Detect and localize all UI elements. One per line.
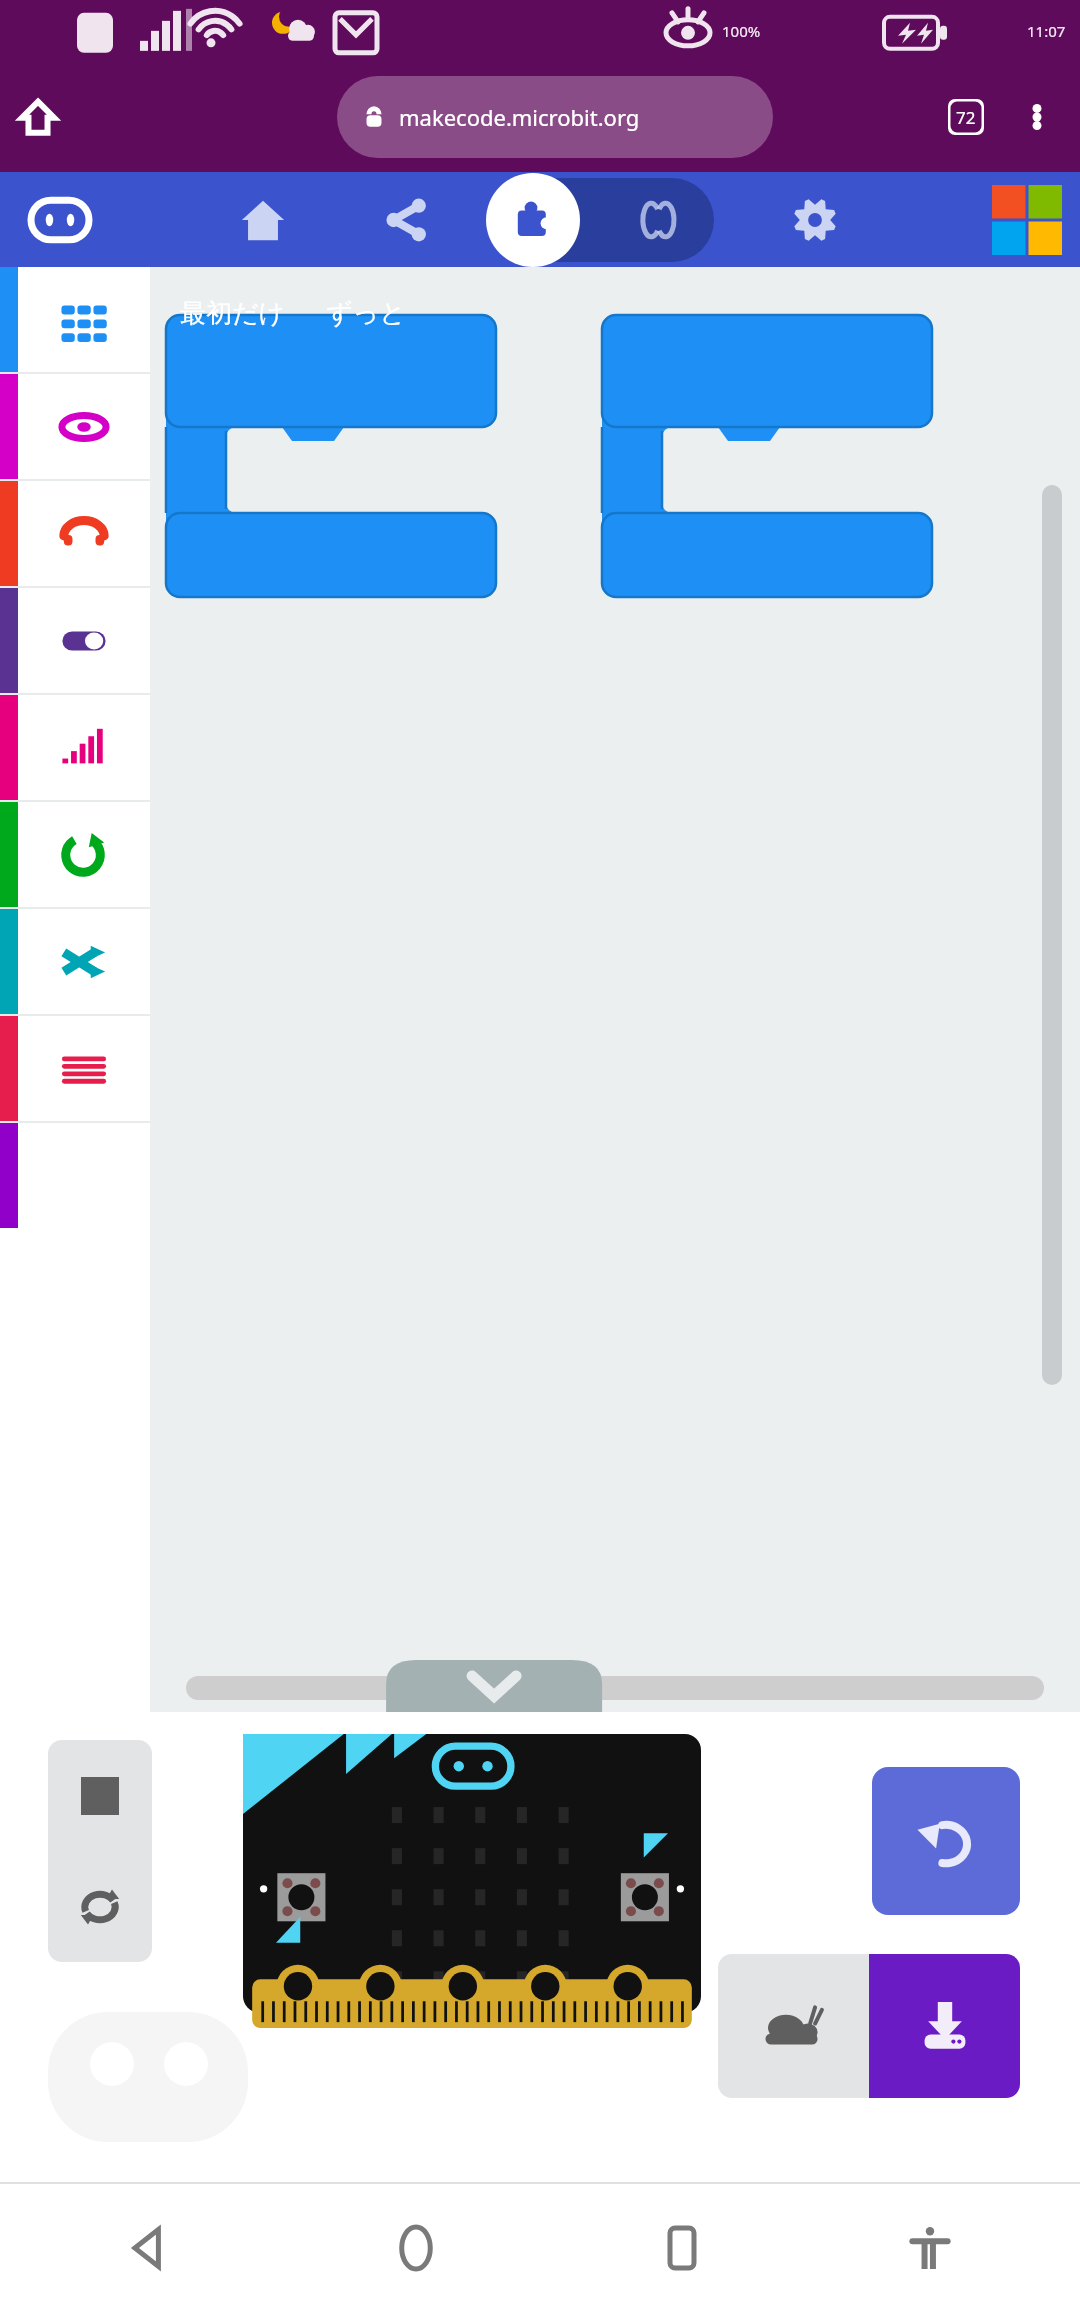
button[interactable]: Slow motion (718, 1954, 869, 2098)
button[interactable]: Microsoft (990, 183, 1064, 257)
staticText: 最初だけ (180, 297, 286, 330)
button[interactable]: Category 3 (0, 481, 150, 586)
button[interactable]: micro:bit (22, 182, 98, 258)
button[interactable]: Category 9 (0, 1123, 150, 1228)
button[interactable]: Home (361, 2193, 471, 2303)
staticText: ずっと (326, 297, 406, 330)
button[interactable]: More options (1012, 92, 1062, 142)
button[interactable]: Stop (48, 1740, 152, 1851)
button[interactable]: Home (228, 185, 298, 255)
staticText: 11:07 (1027, 21, 1066, 41)
button[interactable]: Category 2 (0, 374, 150, 479)
button[interactable]: Category 6 (0, 802, 150, 907)
staticText: 72 (956, 106, 976, 129)
button[interactable]: makecode.microbit.org (337, 76, 773, 158)
button[interactable]: Category 7 (0, 909, 150, 1014)
button[interactable]: Restart (48, 1851, 152, 1962)
button[interactable]: Toggle blocks and JavaScript (486, 178, 714, 262)
button[interactable]: Category 4 (0, 588, 150, 693)
button[interactable]: Accessibility (875, 2193, 985, 2303)
button[interactable]: Tabs (940, 91, 992, 143)
button[interactable]: Settings (780, 185, 850, 255)
staticText: 100% (722, 21, 761, 41)
button[interactable]: Share (372, 185, 442, 255)
button[interactable]: Home (10, 89, 66, 145)
button[interactable]: Download (869, 1954, 1020, 2098)
button[interactable]: Recent apps (627, 2193, 737, 2303)
button[interactable]: Undo (872, 1767, 1020, 1915)
button[interactable]: Category 1 (0, 267, 150, 372)
button[interactable]: Back (95, 2193, 205, 2303)
button[interactable]: Category 8 (0, 1016, 150, 1121)
staticText: makecode.microbit.org (399, 102, 640, 132)
button[interactable]: Category 5 (0, 695, 150, 800)
